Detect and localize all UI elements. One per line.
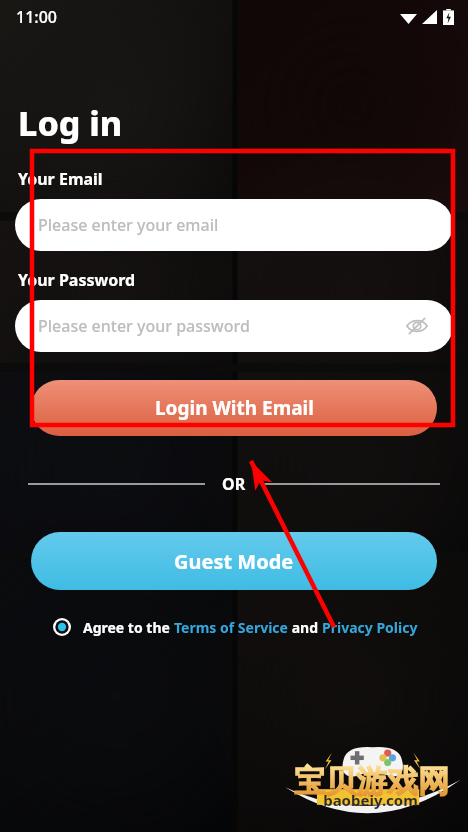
staticText: OR: [222, 473, 246, 495]
button[interactable]: Please enter your email: [15, 199, 453, 251]
staticText: Your Password: [18, 269, 136, 291]
staticText: Guest Mode: [174, 548, 294, 575]
button[interactable]: Agree to terms: [50, 615, 74, 639]
staticText: Please enter your email: [38, 214, 219, 236]
staticText: Agree to the: [83, 618, 174, 637]
staticText: Login With Email: [155, 395, 314, 421]
staticText: Terms of Service: [174, 618, 288, 637]
staticText: 11:00: [16, 6, 57, 28]
staticText: Please enter your password: [38, 315, 250, 337]
button[interactable]: Terms of Service: [174, 618, 288, 637]
button[interactable]: Privacy Policy: [322, 618, 418, 637]
button[interactable]: Show password: [403, 312, 431, 340]
staticText: Log in: [18, 100, 123, 146]
staticText: and: [288, 618, 322, 637]
button[interactable]: Guest Mode: [31, 532, 437, 590]
button[interactable]: Please enter your password: [15, 300, 453, 352]
staticText: Your Email: [18, 168, 103, 190]
button[interactable]: Login With Email: [31, 380, 437, 436]
staticText: 宝贝游戏网: [294, 762, 449, 801]
staticText: baobeiy.com: [323, 790, 418, 810]
staticText: Privacy Policy: [322, 618, 418, 637]
